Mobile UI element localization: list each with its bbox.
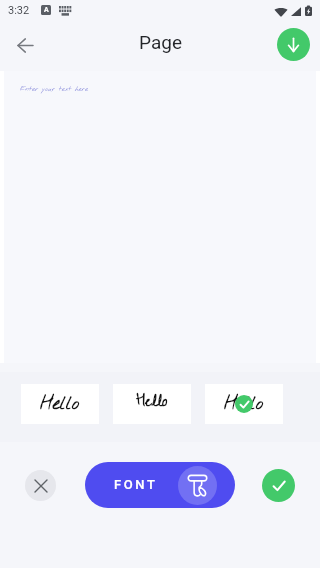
- staticText: Hello: [136, 389, 168, 419]
- staticText: Enter your text here: [20, 84, 88, 93]
- button[interactable]: Close: [25, 470, 56, 501]
- staticText: 3:32: [8, 4, 30, 17]
- button[interactable]: Download: [277, 28, 310, 61]
- button[interactable]: Back: [6, 27, 43, 64]
- button[interactable]: Hello: [205, 384, 283, 424]
- staticText: A: [44, 6, 49, 14]
- button[interactable]: FONT: [85, 462, 235, 508]
- button[interactable]: Hello: [113, 384, 191, 424]
- staticText: Hello: [224, 392, 264, 416]
- staticText: Hello: [40, 392, 80, 416]
- staticText: FONT: [114, 477, 158, 492]
- staticText: Page: [139, 31, 182, 53]
- button[interactable]: Hello: [21, 384, 99, 424]
- button[interactable]: Confirm: [262, 469, 295, 502]
